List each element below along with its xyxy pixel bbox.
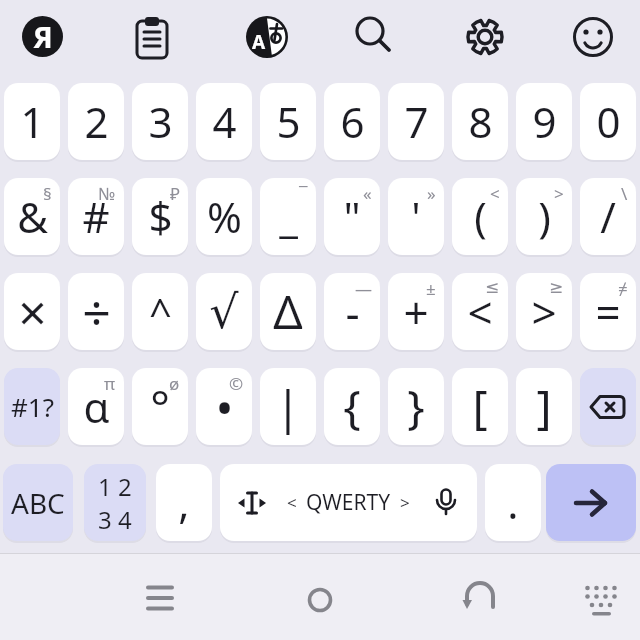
- button[interactable]: ]: [516, 368, 572, 445]
- button[interactable]: ": [324, 178, 380, 255]
- button[interactable]: >: [516, 273, 572, 350]
- button[interactable]: =: [580, 273, 636, 350]
- button[interactable]: ÷: [68, 273, 124, 350]
- button[interactable]: [584, 584, 622, 618]
- button[interactable]: ,: [156, 464, 212, 541]
- staticText: >: [531, 282, 557, 342]
- staticText: Δ: [273, 280, 303, 343]
- staticText: /: [600, 188, 616, 245]
- button[interactable]: Δ: [260, 273, 316, 350]
- button[interactable]: [246, 16, 288, 58]
- button[interactable]: /: [580, 178, 636, 255]
- staticText: 3: [148, 93, 173, 150]
- staticText: 9: [532, 93, 557, 150]
- button[interactable]: -: [324, 273, 380, 350]
- button[interactable]: [580, 368, 636, 445]
- button[interactable]: [144, 582, 176, 614]
- button[interactable]: (: [452, 178, 508, 255]
- staticText: ÷: [82, 278, 111, 346]
- button[interactable]: [546, 464, 636, 541]
- button[interactable]: [350, 12, 398, 60]
- button[interactable]: 9: [516, 83, 572, 160]
- staticText: =: [595, 282, 621, 342]
- staticText: √: [209, 285, 239, 339]
- button[interactable]: 4: [196, 83, 252, 160]
- button[interactable]: ^: [132, 273, 188, 350]
- button[interactable]: <: [220, 464, 477, 541]
- button[interactable]: ': [388, 178, 444, 255]
- staticText: |: [275, 375, 301, 438]
- staticText: 8: [468, 93, 493, 150]
- staticText: ø: [169, 372, 180, 395]
- staticText: ]: [536, 375, 552, 438]
- button[interactable]: °: [132, 368, 188, 445]
- button[interactable]: _: [260, 178, 316, 255]
- staticText: ≤: [485, 277, 500, 297]
- staticText: ©: [229, 372, 244, 395]
- staticText: <: [490, 182, 500, 205]
- button[interactable]: 6: [324, 83, 380, 160]
- button[interactable]: [572, 16, 614, 58]
- staticText: «: [363, 182, 372, 205]
- staticText: π: [104, 372, 116, 395]
- staticText: ": [343, 188, 361, 245]
- staticText: ABC: [11, 484, 65, 522]
- staticText: >: [554, 182, 564, 205]
- button[interactable]: 1 2: [84, 464, 146, 541]
- button[interactable]: .: [485, 464, 541, 541]
- staticText: »: [427, 182, 436, 205]
- button[interactable]: [304, 584, 336, 616]
- button[interactable]: Я: [22, 16, 63, 57]
- button[interactable]: }: [388, 368, 444, 445]
- button[interactable]: #1?: [4, 368, 60, 445]
- button[interactable]: 8: [452, 83, 508, 160]
- button[interactable]: {: [324, 368, 380, 445]
- button[interactable]: %: [196, 178, 252, 255]
- staticText: ): [538, 188, 551, 245]
- staticText: &: [17, 188, 48, 245]
- staticText: QWERTY: [306, 488, 391, 517]
- button[interactable]: <: [452, 273, 508, 350]
- button[interactable]: ): [516, 178, 572, 255]
- staticText: 5: [276, 93, 301, 150]
- button[interactable]: [462, 578, 498, 614]
- button[interactable]: 7: [388, 83, 444, 160]
- staticText: Я: [33, 17, 53, 56]
- staticText: _: [279, 188, 298, 245]
- button[interactable]: 0: [580, 83, 636, 160]
- button[interactable]: 2: [68, 83, 124, 160]
- staticText: }: [407, 375, 425, 438]
- staticText: <: [467, 282, 493, 342]
- button[interactable]: 1: [4, 83, 60, 160]
- button[interactable]: [130, 12, 174, 62]
- staticText: 3 4: [98, 503, 132, 536]
- staticText: 1 2: [98, 470, 132, 503]
- staticText: (: [474, 188, 487, 245]
- staticText: [: [472, 375, 488, 438]
- button[interactable]: ×: [4, 273, 60, 350]
- button[interactable]: |: [260, 368, 316, 445]
- button[interactable]: √: [196, 273, 252, 350]
- button[interactable]: ABC: [3, 464, 73, 541]
- button[interactable]: α: [68, 368, 124, 445]
- button[interactable]: [461, 13, 509, 61]
- staticText: %: [207, 188, 242, 245]
- button[interactable]: 3: [132, 83, 188, 160]
- staticText: •: [215, 374, 234, 439]
- button[interactable]: &: [4, 178, 60, 255]
- staticText: {: [343, 375, 361, 438]
- staticText: >: [400, 491, 410, 514]
- button[interactable]: [: [452, 368, 508, 445]
- staticText: ±: [426, 277, 436, 300]
- staticText: \: [621, 182, 628, 205]
- button[interactable]: •: [196, 368, 252, 445]
- staticText: 0: [596, 93, 621, 150]
- button[interactable]: +: [388, 273, 444, 350]
- staticText: A: [252, 29, 266, 55]
- staticText: +: [403, 282, 429, 342]
- staticText: $: [148, 188, 173, 245]
- button[interactable]: #: [68, 178, 124, 255]
- button[interactable]: 5: [260, 83, 316, 160]
- button[interactable]: $: [132, 178, 188, 255]
- staticText: 4: [212, 93, 237, 150]
